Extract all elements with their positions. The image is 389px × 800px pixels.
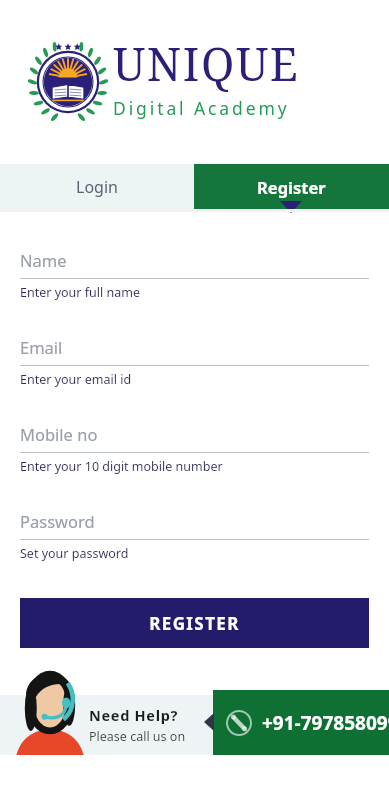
button[interactable]: REGISTER xyxy=(20,598,369,648)
button[interactable]: Email xyxy=(0,336,389,388)
staticText: Enter your 10 digit mobile number xyxy=(20,458,223,475)
button[interactable]: Password xyxy=(0,510,389,562)
staticText: UNIQUE xyxy=(113,33,300,94)
button[interactable]: Login xyxy=(0,164,194,209)
staticText: +91-7978580998 xyxy=(262,710,389,736)
other: Call xyxy=(226,710,252,736)
staticText: Please call us on xyxy=(89,728,186,745)
button[interactable]: Mobile no xyxy=(0,423,389,475)
staticText: Set your password xyxy=(20,545,129,562)
staticText: Need Help? xyxy=(89,705,179,725)
staticText: Enter your email id xyxy=(20,371,132,388)
button[interactable]: Call xyxy=(213,690,389,755)
staticText: Register xyxy=(257,176,326,198)
button[interactable]: Register xyxy=(194,164,389,209)
button[interactable]: Name xyxy=(0,249,389,301)
staticText: Mobile no xyxy=(20,423,98,445)
staticText: REGISTER xyxy=(149,612,240,635)
staticText: Enter your full name xyxy=(20,284,140,301)
staticText: Email xyxy=(20,336,63,358)
staticText: Login xyxy=(76,176,118,198)
staticText: Name xyxy=(20,249,67,271)
staticText: Password xyxy=(20,510,95,532)
staticText: Digital Academy xyxy=(113,96,290,120)
